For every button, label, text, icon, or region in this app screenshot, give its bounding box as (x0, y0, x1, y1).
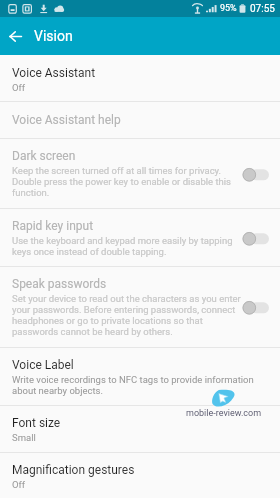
button[interactable]: Speak passwords (0, 267, 280, 347)
staticText: Rapid key input (12, 219, 94, 233)
staticText: Off (12, 479, 26, 490)
button[interactable]: Magnification gestures (0, 453, 280, 498)
button[interactable]: Toggle Speak passwords (242, 299, 270, 315)
staticText: Voice Assistant (12, 66, 96, 80)
staticText: 07:55 (250, 3, 275, 15)
button[interactable]: Toggle Dark screen (242, 166, 270, 182)
staticText: Write voice recordings to NFC tags to pr… (12, 374, 262, 396)
button[interactable]: Back (0, 17, 30, 55)
staticText: Small (12, 432, 36, 443)
staticText: Off (12, 82, 26, 93)
staticText: Keep the screen turned off at all times … (12, 165, 251, 198)
staticText: Set your device to read out the characte… (12, 293, 251, 337)
staticText: Font size (12, 416, 61, 430)
button[interactable]: Rapid key input (0, 209, 280, 266)
button[interactable]: Dark screen (0, 139, 280, 208)
staticText: Magnification gestures (12, 463, 135, 477)
staticText: Voice Label (12, 358, 74, 372)
staticText: Voice Assistant help (12, 113, 121, 127)
button[interactable]: Font size (0, 406, 280, 452)
button[interactable]: Voice Assistant help (0, 102, 280, 138)
button[interactable]: Voice Assistant (0, 55, 280, 101)
button[interactable]: Toggle Rapid key input (242, 230, 270, 246)
staticText: Use the keyboard and keypad more easily … (12, 235, 251, 257)
staticText: Dark screen (12, 149, 76, 163)
staticText: mobile-review.com (186, 408, 262, 419)
staticText: 95% (220, 3, 237, 14)
staticText: Speak passwords (12, 277, 107, 291)
button[interactable]: Voice Label (0, 348, 280, 405)
staticText: Vision (34, 28, 73, 44)
